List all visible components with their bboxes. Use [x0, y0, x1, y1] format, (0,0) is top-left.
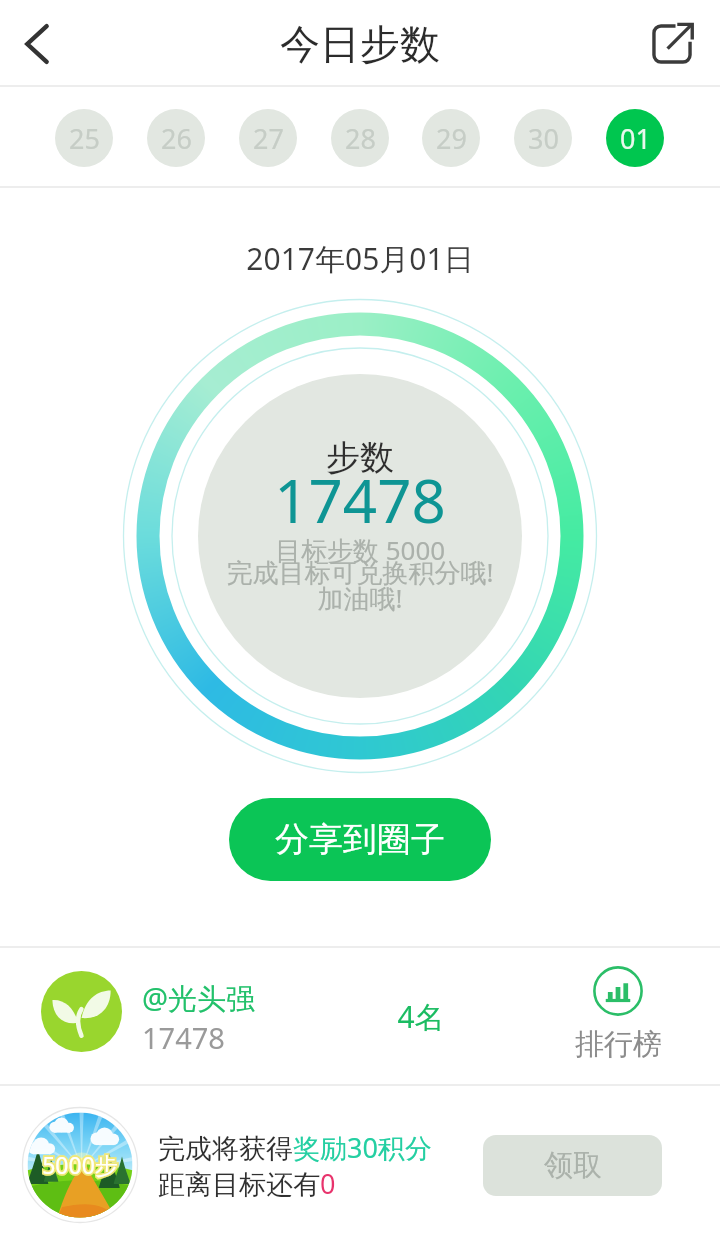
staticText: 2017年05月01日	[0, 238, 720, 279]
staticText: 完成目标可兑换积分哦! 加油哦!	[120, 554, 600, 616]
staticText: 26	[161, 120, 192, 157]
staticText: 5000步	[42, 1149, 118, 1180]
staticText: 分享到圈子	[275, 818, 445, 861]
staticText: 步数	[120, 436, 600, 479]
button[interactable]: 领取	[483, 1135, 662, 1196]
button[interactable]: 25	[55, 109, 113, 167]
button[interactable]: 27	[239, 109, 297, 167]
button[interactable]: 28	[331, 109, 389, 167]
staticText: 今日步数	[280, 19, 440, 69]
staticText: 29	[436, 120, 467, 157]
button[interactable]: 30	[514, 109, 572, 167]
staticText: 28	[345, 120, 376, 157]
staticText: 排行榜	[575, 1026, 662, 1063]
button[interactable]: @光头强	[0, 948, 720, 1084]
button[interactable]: Share	[624, 1, 720, 87]
staticText: 27	[253, 120, 284, 157]
staticText: @光头强	[142, 978, 256, 1018]
button[interactable]: 分享到圈子	[229, 798, 491, 881]
button[interactable]: 01	[606, 109, 664, 167]
staticText: 4名	[371, 996, 471, 1037]
button[interactable]: 29	[422, 109, 480, 167]
staticText: 17478	[120, 459, 600, 541]
staticText: 完成将获得奖励30积分 距离目标还有0	[158, 1129, 432, 1202]
staticText: 30	[528, 120, 559, 157]
staticText: 17478	[142, 1018, 225, 1057]
staticText: 01	[620, 120, 651, 157]
staticText: 25	[69, 120, 100, 157]
button[interactable]: 排行榜	[558, 966, 678, 1063]
button[interactable]: Back	[0, 0, 74, 87]
button[interactable]: 26	[147, 109, 205, 167]
staticText: 5000步	[42, 1149, 118, 1180]
staticText: 目标步数 5000	[120, 532, 600, 568]
staticText: 领取	[544, 1147, 602, 1184]
